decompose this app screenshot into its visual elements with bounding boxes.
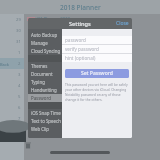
button[interactable]: Handwriting [28, 86, 62, 94]
staticText: Close [116, 20, 129, 27]
button[interactable]: 29 [0, 14, 24, 25]
button[interactable]: Cloud Syncing [28, 47, 62, 55]
staticText: 29 [16, 17, 21, 23]
staticText: Password [31, 95, 51, 101]
button[interactable]: Set Password [65, 69, 129, 78]
staticText: your other devices via iCloud. Changing … [65, 87, 129, 91]
button[interactable]: Typing [28, 78, 62, 86]
button[interactable]: Document [28, 70, 62, 78]
button[interactable]: hint (optional) [62, 54, 132, 62]
button[interactable]: 8 [0, 124, 24, 135]
staticText: 2018 Planner [60, 3, 101, 12]
staticText: Typing [31, 79, 45, 85]
button[interactable]: 7 [0, 113, 24, 124]
staticText: change it for the others. [65, 97, 103, 101]
staticText: verify password [65, 46, 99, 52]
button[interactable]: 30 [0, 25, 24, 36]
button[interactable]: verify password [62, 45, 132, 53]
button[interactable]: iOS Snap Time [28, 109, 62, 117]
staticText: Auto Backup [31, 32, 58, 38]
button[interactable]: password [62, 36, 132, 44]
staticText: This password you set here will be safel… [65, 82, 129, 86]
button[interactable]: Themes [28, 62, 62, 70]
button[interactable]: Password [28, 94, 62, 102]
staticText: Notability password on any of those devi… [65, 92, 129, 96]
staticText: Themes [31, 63, 48, 69]
staticText: Settings [69, 20, 91, 28]
button[interactable]: Auto Backup [28, 31, 62, 39]
staticText: 31 [16, 39, 21, 45]
button[interactable]: Close [116, 20, 129, 27]
staticText: Back [0, 62, 10, 67]
button[interactable]: 4 [0, 80, 24, 91]
staticText: 1 [18, 50, 21, 56]
staticText: 2 [18, 61, 21, 67]
staticText: Web Clip [31, 126, 50, 132]
staticText: Manage Accounts [31, 40, 62, 46]
staticText: 3 [18, 72, 21, 78]
staticText: 4 [18, 83, 21, 89]
button[interactable]: Manage Accounts [28, 39, 62, 47]
staticText: Handwriting [31, 87, 57, 93]
staticText: 5 [18, 94, 21, 100]
staticText: password [65, 37, 86, 43]
staticText: 7 [18, 116, 21, 122]
staticText: 6 [18, 105, 21, 111]
staticText: hint (optional) [65, 55, 96, 61]
staticText: Document [31, 71, 53, 77]
staticText: Q1 Planner 2018 [37, 16, 70, 22]
staticText: Set Password [81, 70, 113, 77]
button[interactable]: Text to Speech [28, 117, 62, 125]
staticText: 30 [16, 28, 21, 34]
button[interactable]: 31 [0, 36, 24, 47]
staticText: Text to Speech [31, 118, 61, 124]
button[interactable]: Web Clip [28, 125, 62, 133]
staticText: Cloud Syncing [31, 48, 61, 54]
button[interactable]: 2 [0, 58, 24, 69]
staticText: 8 [18, 127, 21, 133]
staticText: iOS Snap Time [31, 110, 61, 116]
